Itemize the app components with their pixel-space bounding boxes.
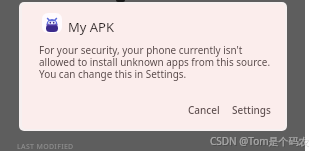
button[interactable]: Cancel — [180, 97, 228, 123]
staticText: CSDN @Tom是个码农 — [210, 134, 309, 148]
staticText: For your security, your phone currently … — [39, 43, 273, 80]
staticText: My APK — [68, 18, 115, 36]
other: My APK app icon — [42, 13, 62, 33]
staticText: CSDN @Tom是个码农 — [211, 135, 310, 149]
button[interactable]: Settings — [224, 97, 279, 123]
staticText: LAST MODIFIED — [17, 142, 74, 151]
staticText: Cancel — [188, 103, 220, 117]
staticText: Settings — [232, 103, 271, 117]
